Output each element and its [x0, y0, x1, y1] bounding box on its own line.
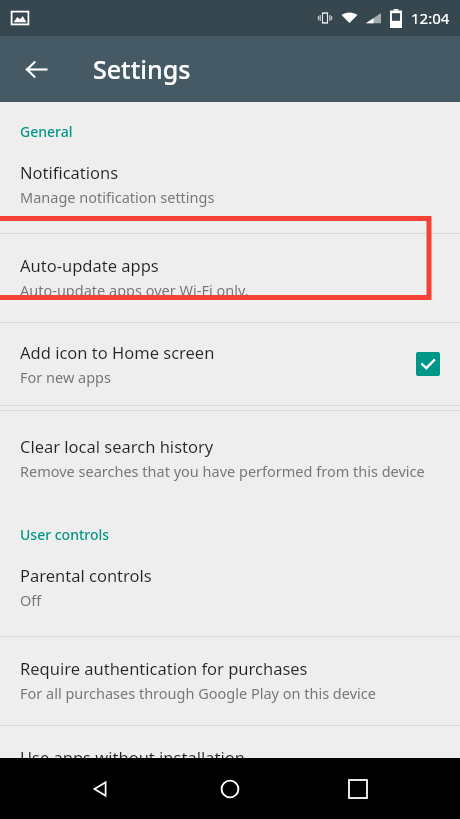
- staticText: Off: [20, 590, 42, 610]
- staticText: Settings: [93, 52, 191, 86]
- button[interactable]: Back: [12, 45, 60, 93]
- button[interactable]: Back: [76, 765, 124, 813]
- staticText: Use apps without installation: [20, 746, 245, 758]
- staticText: Add icon to Home screen: [20, 341, 215, 363]
- staticText: Parental controls: [20, 564, 152, 586]
- staticText: Clear local search history: [20, 435, 214, 457]
- button[interactable]: Add icon to Home screen: [0, 341, 460, 387]
- button[interactable]: Notifications: [0, 161, 460, 207]
- staticText: 12:04: [411, 8, 450, 28]
- staticText: Manage notification settings: [20, 187, 215, 207]
- staticText: User controls: [20, 525, 110, 544]
- staticText: General: [20, 122, 73, 141]
- staticText: Notifications: [20, 161, 119, 183]
- button[interactable]: Require authentication for purchases: [0, 657, 460, 703]
- staticText: Remove searches that you have performed …: [20, 461, 425, 481]
- staticText: Auto-update apps over Wi-Fi only.: [20, 280, 249, 300]
- button[interactable]: Home: [206, 765, 254, 813]
- staticText: For new apps: [20, 367, 111, 387]
- button[interactable]: Clear local search history: [0, 435, 460, 481]
- staticText: Require authentication for purchases: [20, 657, 308, 679]
- button[interactable]: Recent apps: [334, 765, 382, 813]
- staticText: Auto-update apps: [20, 254, 159, 276]
- button[interactable]: Parental controls: [0, 564, 460, 610]
- button[interactable]: Auto-update apps: [0, 254, 460, 300]
- staticText: For all purchases through Google Play on…: [20, 683, 376, 703]
